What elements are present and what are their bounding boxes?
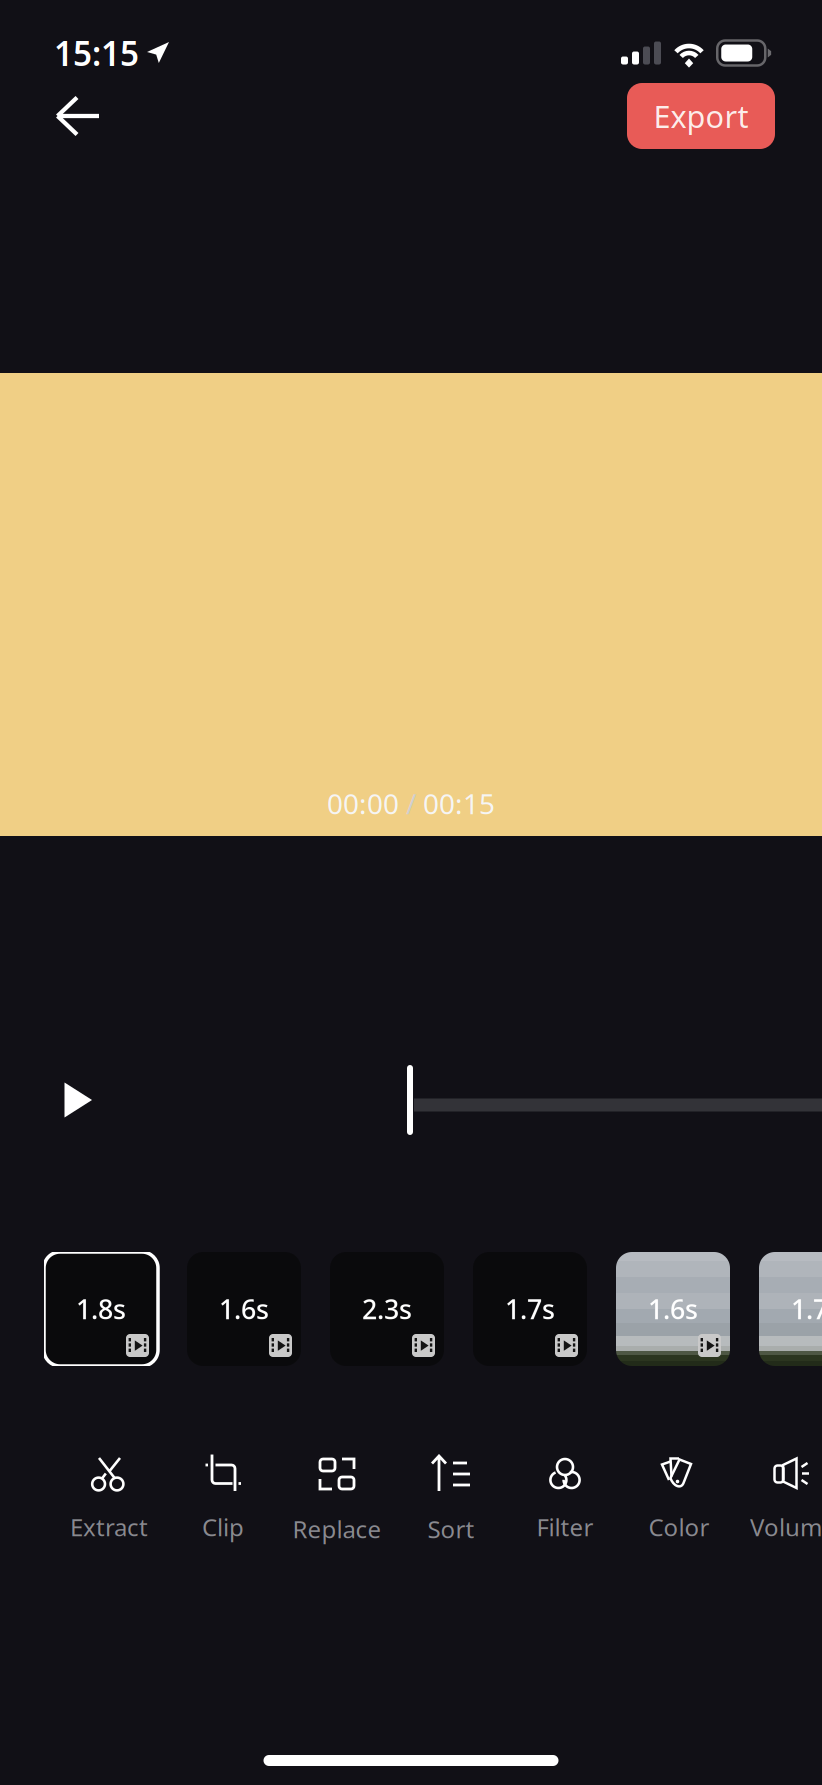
- staticText: 1.6s: [648, 1291, 698, 1327]
- button[interactable]: Export: [627, 83, 775, 149]
- staticText: 15:15: [54, 31, 139, 75]
- staticText: 1.6s: [219, 1291, 269, 1327]
- staticText: Filter: [536, 1511, 593, 1543]
- staticText: 1.7s: [505, 1291, 555, 1327]
- staticText: Replace: [292, 1513, 381, 1545]
- button[interactable]: 1.8s: [44, 1252, 158, 1366]
- staticText: Export: [653, 96, 748, 136]
- button[interactable]: 1.6s: [187, 1252, 301, 1366]
- staticText: 1.7s: [791, 1291, 822, 1327]
- staticText: 00:15: [423, 785, 495, 822]
- staticText: Sort: [427, 1513, 474, 1545]
- staticText: Extract: [70, 1511, 148, 1543]
- button[interactable]: Clip: [166, 1436, 280, 1546]
- staticText: Clip: [202, 1511, 244, 1543]
- button[interactable]: Back: [38, 83, 118, 149]
- staticText: 2.3s: [362, 1291, 412, 1327]
- button[interactable]: Extract: [52, 1436, 166, 1546]
- button[interactable]: Sort: [394, 1436, 508, 1546]
- button[interactable]: Replace: [280, 1436, 394, 1546]
- button[interactable]: Volume: [736, 1436, 822, 1546]
- button[interactable]: Color: [622, 1436, 736, 1546]
- button[interactable]: Play: [38, 1060, 118, 1140]
- button[interactable]: 1.6s: [616, 1252, 730, 1366]
- staticText: 1.8s: [76, 1291, 126, 1327]
- button[interactable]: 2.3s: [330, 1252, 444, 1366]
- staticText: /: [399, 785, 423, 822]
- button[interactable]: 1.7s: [473, 1252, 587, 1366]
- staticText: Volume: [750, 1511, 822, 1543]
- button[interactable]: 1.7s: [759, 1252, 822, 1366]
- staticText: Color: [648, 1511, 709, 1543]
- button[interactable]: Filter: [508, 1436, 622, 1546]
- staticText: 00:00: [327, 785, 399, 822]
